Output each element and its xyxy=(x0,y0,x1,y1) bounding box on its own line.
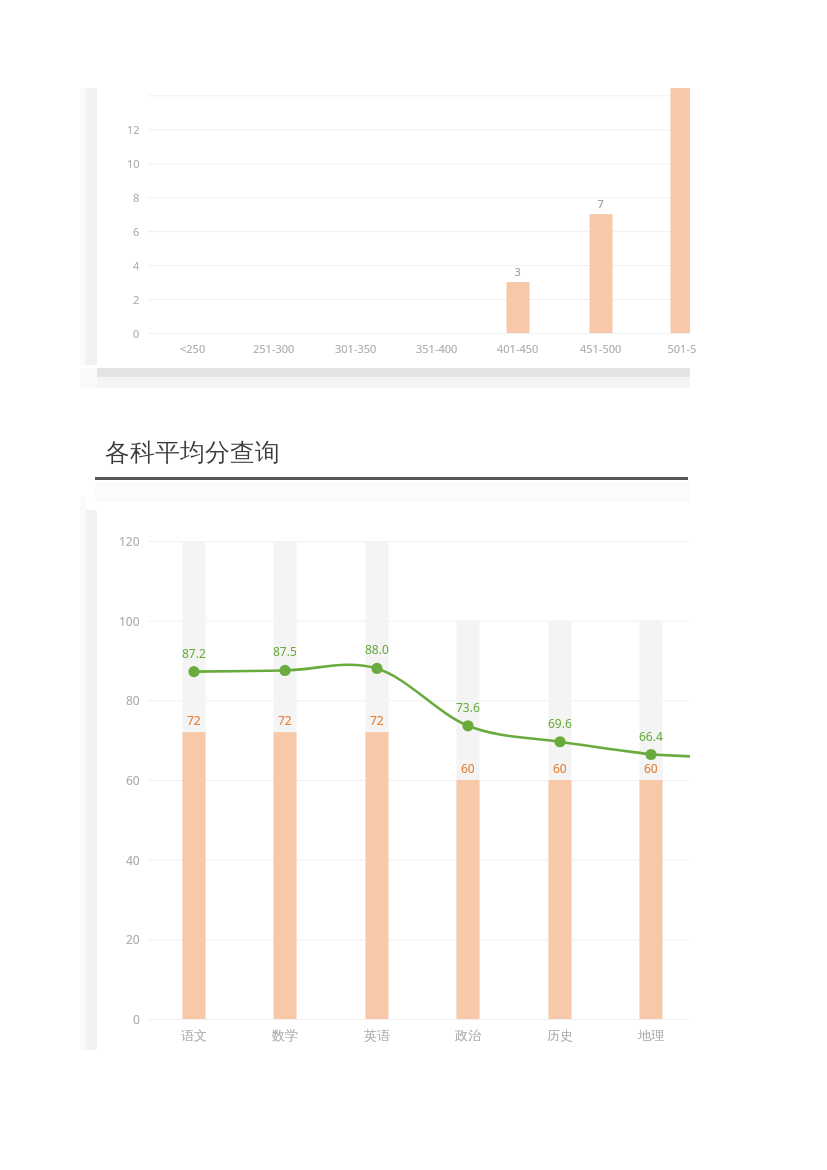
button[interactable] xyxy=(0,0,827,1170)
